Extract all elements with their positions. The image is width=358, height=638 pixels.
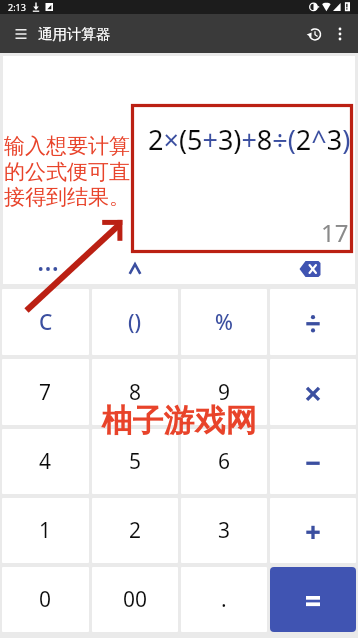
staticText: 9: [218, 378, 231, 407]
button[interactable]: 00: [92, 567, 178, 632]
button[interactable]: Subtract: [270, 429, 356, 494]
button[interactable]: %: [181, 289, 267, 355]
button[interactable]: Multiply: [270, 359, 356, 425]
staticText: 5: [129, 447, 142, 476]
staticText: 2×(5+3)+8÷(2^3): [148, 121, 351, 158]
staticText: (): [128, 308, 142, 337]
button[interactable]: C: [2, 289, 89, 355]
button[interactable]: Equals: [270, 567, 356, 632]
button[interactable]: 8: [92, 359, 178, 425]
button[interactable]: 5: [92, 429, 178, 494]
button[interactable]: Power: [115, 254, 155, 284]
staticText: 7: [39, 378, 52, 407]
staticText: C: [39, 308, 53, 337]
button[interactable]: Backspace: [290, 254, 330, 284]
button[interactable]: 3: [181, 498, 267, 563]
staticText: 3: [218, 516, 231, 545]
button[interactable]: 2: [92, 498, 178, 563]
button[interactable]: 4: [2, 429, 89, 494]
staticText: 输入想要计算的公式便可直接得到结果。: [4, 133, 136, 210]
button[interactable]: 7: [2, 359, 89, 425]
button[interactable]: 0: [2, 567, 89, 632]
button[interactable]: 9: [181, 359, 267, 425]
button[interactable]: .: [181, 567, 267, 632]
button[interactable]: Add: [270, 498, 356, 563]
staticText: 2: [129, 516, 142, 545]
staticText: 17: [321, 216, 349, 249]
button[interactable]: More functions: [28, 254, 68, 284]
button[interactable]: 1: [2, 498, 89, 563]
staticText: 通用计算器: [38, 25, 111, 43]
button[interactable]: More options: [326, 20, 354, 48]
button[interactable]: (): [92, 289, 178, 355]
button[interactable]: Divide: [270, 289, 356, 355]
button[interactable]: 6: [181, 429, 267, 494]
staticText: 2:13: [8, 1, 26, 13]
staticText: 00: [123, 585, 148, 614]
staticText: 4: [39, 447, 52, 476]
staticText: 柚子游戏网: [0, 401, 358, 638]
staticText: 8: [129, 378, 142, 407]
staticText: %: [215, 308, 233, 337]
staticText: 1: [39, 516, 52, 545]
button[interactable]: History: [297, 16, 333, 52]
staticText: .: [221, 585, 227, 614]
staticText: 6: [218, 447, 231, 476]
button[interactable]: Menu: [5, 18, 37, 50]
staticText: 0: [39, 585, 52, 614]
